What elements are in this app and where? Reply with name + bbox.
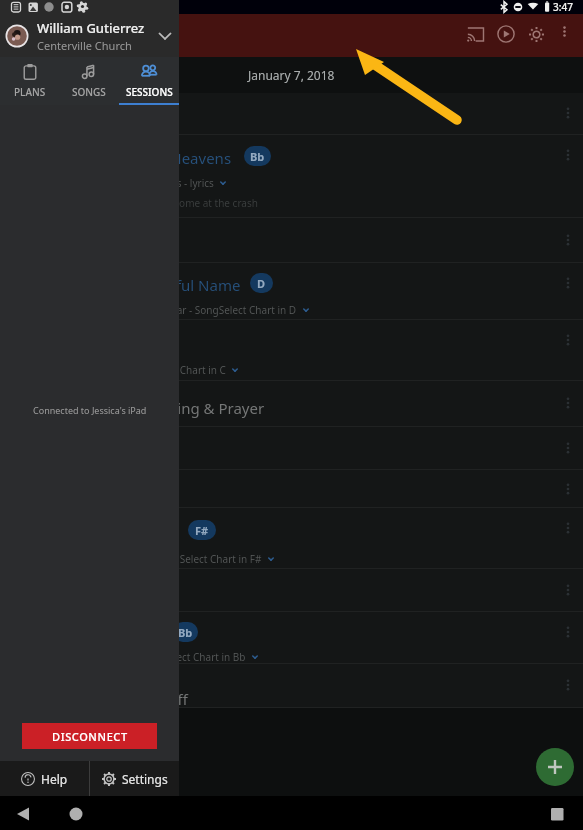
button[interactable]: SESSIONS (119, 57, 179, 105)
button[interactable]: Wonderful Name (0, 263, 583, 319)
button[interactable] (0, 218, 583, 262)
staticText: January 7, 2018 (248, 67, 335, 83)
staticText: F# (195, 523, 209, 538)
staticText: Guitar - SongSelect Chart in F# (118, 552, 262, 566)
button[interactable] (0, 427, 583, 469)
button[interactable]: SONGS (59, 57, 119, 105)
button[interactable]: DISCONNECT (22, 723, 157, 749)
staticText: William Gutierrez (37, 19, 145, 37)
button[interactable]: Help (0, 761, 89, 796)
staticText: Guitar - SongSelect Chart in Bb (101, 650, 246, 664)
button[interactable]: Acoustic Guitar Chart in C (0, 320, 583, 380)
button[interactable]: Recents (540, 803, 574, 830)
staticText: Settings (122, 771, 168, 787)
staticText: Guitar - SongSelect Chart in D (157, 303, 297, 317)
staticText: Time of Singing & Prayer (90, 398, 265, 418)
button[interactable]: Pre-Service Music (0, 93, 583, 134)
button[interactable]: Back (8, 803, 42, 830)
staticText: SONGS (72, 85, 106, 99)
staticText: Welcome at the crash (157, 196, 258, 210)
button[interactable]: Settings (90, 761, 179, 796)
button[interactable]: Add (536, 748, 574, 786)
button[interactable]: Brightness (520, 18, 552, 50)
staticText: DISCONNECT (52, 729, 128, 744)
button[interactable]: William Gutierrez (0, 14, 179, 57)
button[interactable]: Cast (459, 18, 491, 50)
button[interactable] (0, 569, 583, 611)
button[interactable] (0, 470, 583, 507)
button[interactable]: Play (490, 18, 522, 50)
button[interactable]: PLANS (0, 57, 59, 105)
staticText: PLANS (14, 85, 46, 99)
staticText: Wonderful Name (120, 275, 241, 295)
staticText: SESSIONS (126, 85, 173, 99)
button[interactable]: Open The Heavens (0, 135, 583, 217)
button[interactable]: Bb (0, 612, 583, 663)
button[interactable]: More options (551, 18, 577, 44)
staticText: Bb (178, 625, 193, 640)
staticText: 3:47 (553, 0, 573, 14)
staticText: Offering / Send off (57, 689, 188, 709)
staticText: Connected to Jessica's iPad (33, 404, 147, 416)
staticText: Chords - lyrics (148, 176, 214, 190)
button[interactable]: Home (59, 803, 93, 830)
staticText: D (257, 276, 266, 291)
button[interactable]: Time of Singing & Prayer (0, 381, 583, 426)
button[interactable]: F# (0, 508, 583, 568)
staticText: Open The Heavens (98, 148, 232, 168)
staticText: Centerville Church (37, 38, 132, 53)
staticText: Bb (250, 149, 265, 164)
button[interactable]: Offering / Send off (0, 664, 583, 707)
staticText: Acoustic Guitar Chart in C (106, 363, 226, 377)
staticText: Help (41, 771, 68, 787)
